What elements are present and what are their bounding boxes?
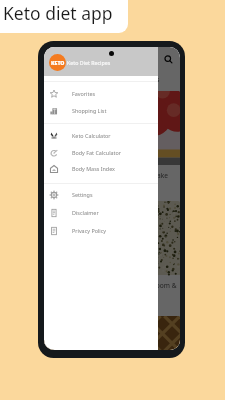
staticText: Disclaimer bbox=[72, 209, 99, 216]
staticText: Settings bbox=[72, 191, 93, 198]
staticText: Creamy Keto Garlic Spinach Mushroom & bbox=[49, 281, 177, 290]
staticText: Privacy Policy bbox=[72, 227, 107, 234]
button[interactable]: Body Mass Index bbox=[44, 160, 158, 177]
staticText: Shopping List bbox=[72, 107, 107, 114]
button[interactable]: Body Fat Calculator bbox=[44, 144, 158, 161]
staticText: Popular Low Carb Keto Diet Recipes bbox=[49, 75, 160, 84]
button[interactable]: Keto Calculator bbox=[44, 127, 158, 144]
staticText: Body Fat Calculator bbox=[72, 149, 121, 156]
staticText: Low Carb Keto Strawberry Cheesecake Crea… bbox=[49, 171, 180, 180]
button[interactable]: Search bbox=[161, 52, 175, 66]
button[interactable]: Crispy Keto Cheddar Chaffle Waffles bbox=[44, 316, 180, 350]
staticText: Keto diet app bbox=[3, 1, 113, 25]
staticText: Keto Diet Recipes bbox=[67, 59, 111, 66]
button[interactable]: Creamy Keto Garlic Spinach Mushroom & bbox=[44, 201, 180, 305]
staticText: Keto Calculator bbox=[72, 132, 111, 139]
button[interactable]: Disclaimer bbox=[44, 204, 158, 221]
button[interactable]: Low Carb Keto Strawberry Cheesecake Crea… bbox=[44, 91, 180, 195]
button[interactable]: Privacy Policy bbox=[44, 222, 158, 239]
staticText: Favorites bbox=[72, 90, 96, 97]
staticText: KETO bbox=[51, 59, 65, 66]
staticText: Body Mass Index bbox=[72, 165, 115, 172]
button[interactable]: Favorites bbox=[44, 85, 158, 102]
button[interactable]: Shopping List bbox=[44, 102, 158, 119]
button[interactable]: Settings bbox=[44, 186, 158, 203]
